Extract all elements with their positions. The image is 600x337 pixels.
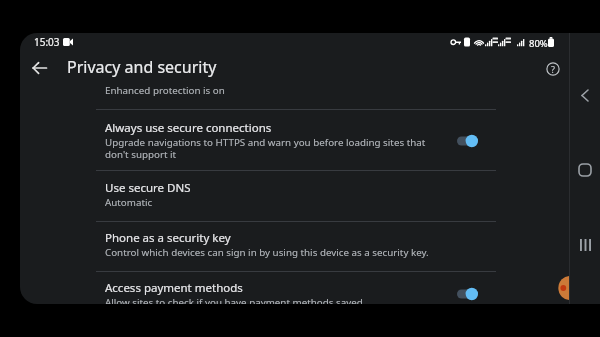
button[interactable]: Phone as a security key <box>20 220 496 269</box>
staticText: Phone as a security key <box>105 230 231 246</box>
staticText: ? <box>551 63 555 75</box>
staticText: Allow sites to check if you have payment… <box>105 296 363 304</box>
button[interactable]: Home <box>570 155 600 185</box>
staticText: Access payment methods <box>105 280 243 296</box>
staticText: 15:03 <box>34 35 60 49</box>
button[interactable]: Always use secure connections <box>20 110 496 171</box>
button[interactable]: Back <box>570 80 600 110</box>
staticText: Control which devices can sign in by usi… <box>105 246 429 259</box>
staticText: Upgrade navigations to HTTPS and warn yo… <box>105 136 435 161</box>
staticText: Privacy and security <box>67 56 217 78</box>
staticText: 80% <box>529 37 548 50</box>
button[interactable]: Back <box>24 53 54 83</box>
button[interactable]: Access payment methods <box>20 269 496 304</box>
staticText: Always use secure connections <box>105 120 272 136</box>
staticText: Automatic <box>105 196 153 209</box>
button[interactable]: Use secure DNS <box>20 169 496 219</box>
button[interactable]: Toggle <box>457 286 478 302</box>
staticText: Enhanced protection is on <box>105 84 225 97</box>
button[interactable]: Help <box>539 55 567 83</box>
staticText: Use secure DNS <box>105 180 191 196</box>
button[interactable]: Toggle <box>457 133 478 149</box>
button[interactable]: Recent apps <box>570 230 600 260</box>
